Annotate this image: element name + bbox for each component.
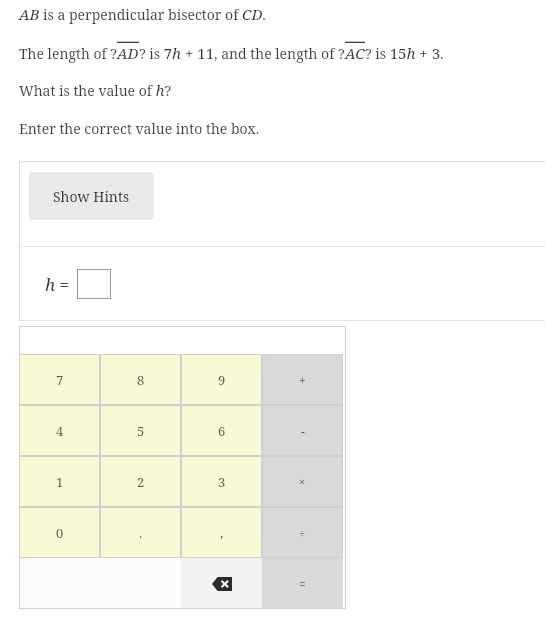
staticText: ? is 15h + 3. bbox=[365, 43, 444, 63]
staticText: - bbox=[301, 423, 305, 439]
button[interactable] bbox=[100, 558, 181, 609]
staticText: 9 bbox=[218, 371, 226, 389]
button[interactable]: Answer input box bbox=[77, 269, 111, 299]
staticText: , bbox=[220, 524, 224, 542]
button[interactable]: 4 bbox=[19, 405, 100, 456]
button[interactable]: 8 bbox=[100, 354, 181, 405]
button[interactable]: × bbox=[262, 456, 343, 507]
button[interactable]: , bbox=[181, 507, 262, 558]
button[interactable]: 0 bbox=[19, 507, 100, 558]
staticText: Show Hints bbox=[53, 187, 130, 206]
staticText: 5 bbox=[137, 422, 145, 440]
button[interactable]: ÷ bbox=[262, 507, 343, 558]
staticText: AB is a perpendicular bisector of CD. bbox=[19, 4, 266, 24]
staticText: What is the value of h? bbox=[19, 80, 172, 100]
button[interactable] bbox=[19, 558, 100, 609]
staticText: 4 bbox=[56, 422, 64, 440]
button[interactable]: Backspace bbox=[181, 558, 262, 609]
staticText: 6 bbox=[218, 422, 226, 440]
button[interactable]: 1 bbox=[19, 456, 100, 507]
button[interactable]: = bbox=[262, 558, 343, 609]
staticText: ? is 7h + 11, and the length of ? bbox=[139, 43, 345, 63]
staticText: 3 bbox=[218, 473, 226, 491]
staticText: . bbox=[139, 524, 143, 542]
button[interactable]: 9 bbox=[181, 354, 262, 405]
staticText: + bbox=[299, 372, 306, 388]
staticText: The length of ? bbox=[19, 44, 117, 63]
staticText: × bbox=[299, 474, 306, 489]
button[interactable]: 3 bbox=[181, 456, 262, 507]
staticText: 1 bbox=[56, 473, 64, 491]
button[interactable]: 6 bbox=[181, 405, 262, 456]
button[interactable]: - bbox=[262, 405, 343, 456]
staticText: 0 bbox=[56, 524, 64, 542]
button[interactable]: + bbox=[262, 354, 343, 405]
button[interactable]: 2 bbox=[100, 456, 181, 507]
button[interactable]: 7 bbox=[19, 354, 100, 405]
staticText: AC bbox=[345, 43, 365, 63]
staticText: = bbox=[299, 576, 306, 592]
staticText: h = bbox=[45, 273, 70, 296]
staticText: AD bbox=[117, 43, 139, 63]
button[interactable]: 5 bbox=[100, 405, 181, 456]
staticText: ÷ bbox=[299, 525, 306, 540]
staticText: Enter the correct value into the box. bbox=[19, 119, 260, 138]
staticText: 8 bbox=[137, 371, 145, 389]
button[interactable]: Show Hints bbox=[29, 172, 154, 220]
staticText: 7 bbox=[56, 371, 64, 389]
button[interactable]: . bbox=[100, 507, 181, 558]
staticText: 2 bbox=[137, 473, 145, 491]
